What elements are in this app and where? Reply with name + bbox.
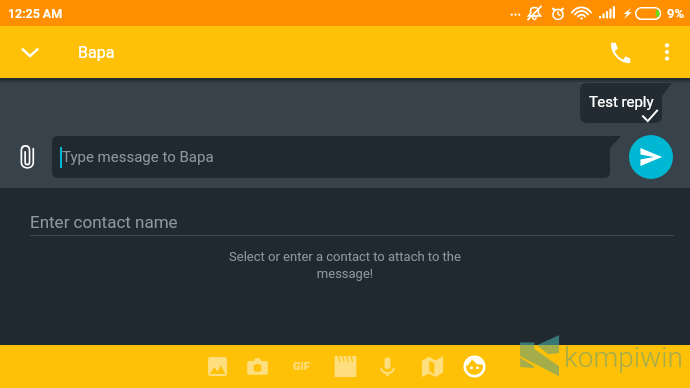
button[interactable]: GIF <box>280 345 322 388</box>
button[interactable]: Call <box>595 28 643 76</box>
staticText: 9% <box>667 6 684 21</box>
staticText: Enter contact name <box>30 212 178 232</box>
button[interactable]: Send <box>629 135 673 179</box>
staticText: Select or enter a contact to attach to t… <box>0 249 690 282</box>
button[interactable]: Emoji <box>453 345 495 388</box>
staticText: Bapa <box>78 43 115 62</box>
button[interactable]: Attach <box>8 136 46 178</box>
button[interactable]: Camera <box>236 345 278 388</box>
staticText: kompiwin <box>564 341 683 374</box>
staticText: GIF <box>293 360 310 373</box>
staticText: Type message to Bapa <box>62 148 214 166</box>
button[interactable]: Video <box>324 345 366 388</box>
button[interactable]: Enter contact name <box>0 201 690 243</box>
button[interactable]: More options <box>643 28 690 76</box>
button[interactable]: Gallery <box>196 345 238 388</box>
staticText: kompiwin <box>564 341 683 374</box>
staticText: 12:25 AM <box>8 6 63 21</box>
button[interactable]: Location <box>411 345 453 388</box>
staticText: Test reply <box>589 93 654 111</box>
button[interactable]: Type message to Bapa <box>52 136 621 178</box>
button[interactable]: Test reply <box>580 83 672 123</box>
button[interactable]: Collapse <box>8 30 52 74</box>
button[interactable]: Voice <box>366 345 408 388</box>
